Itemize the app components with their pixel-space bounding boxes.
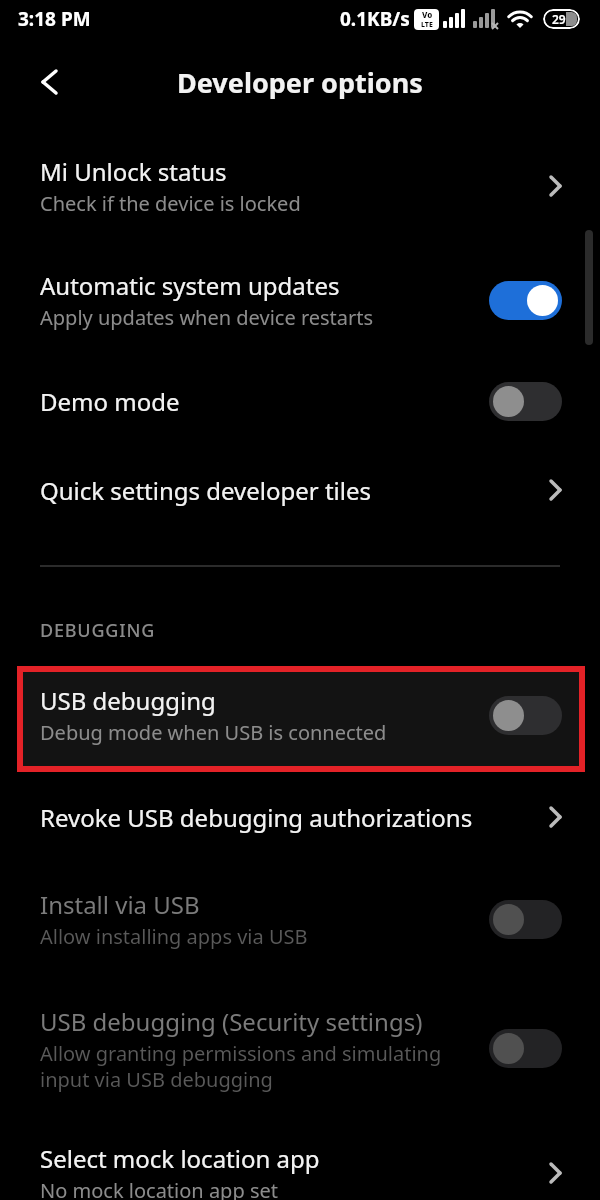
staticText: Mi Unlock status [40, 155, 227, 188]
staticText: Allow granting permissions and simulatin… [40, 1040, 442, 1093]
staticText: Install via USB [40, 888, 200, 921]
staticText: 29 [552, 11, 566, 27]
button[interactable]: Mi Unlock status [0, 133, 600, 239]
button[interactable] [489, 281, 562, 320]
button[interactable]: Quick settings developer tiles [0, 444, 600, 536]
staticText: Vo [422, 9, 433, 20]
staticText: 3:18 PM [18, 6, 91, 32]
button[interactable]: Automatic system updates [0, 247, 600, 353]
staticText: No mock location app set [40, 1177, 278, 1200]
staticText: Select mock location app [40, 1142, 320, 1175]
button[interactable] [489, 1029, 562, 1068]
staticText: 0.1KB/s [340, 6, 410, 32]
button[interactable]: USB debugging (Security settings) [0, 980, 600, 1117]
button[interactable] [489, 382, 562, 421]
button[interactable]: Revoke USB debugging authorizations [0, 772, 600, 862]
staticText: Automatic system updates [40, 269, 340, 302]
staticText: Demo mode [40, 385, 180, 418]
staticText: USB debugging [40, 684, 216, 717]
staticText: DEBUGGING [40, 618, 156, 643]
button[interactable] [28, 60, 72, 104]
button[interactable]: Demo mode [0, 355, 600, 447]
staticText: Allow installing apps via USB [40, 923, 308, 950]
staticText: Debug mode when USB is connected [40, 719, 387, 746]
staticText: USB debugging (Security settings) [40, 1005, 423, 1038]
button[interactable]: Install via USB [0, 866, 600, 972]
staticText: Quick settings developer tiles [40, 474, 372, 507]
button[interactable] [489, 900, 562, 939]
button[interactable]: USB debugging [17, 666, 585, 772]
staticText: Developer options [177, 64, 423, 101]
button[interactable]: Select mock location app [0, 1120, 600, 1200]
staticText: Check if the device is locked [40, 190, 301, 217]
button[interactable] [489, 696, 562, 735]
staticText: Revoke USB debugging authorizations [40, 801, 473, 834]
staticText: LTE [421, 20, 433, 30]
staticText: Apply updates when device restarts [40, 304, 374, 331]
